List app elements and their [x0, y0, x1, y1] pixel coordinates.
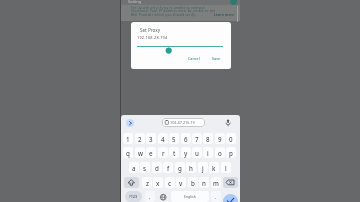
button[interactable]: v — [176, 177, 186, 188]
button[interactable]: p — [226, 147, 236, 158]
staticText: b — [191, 179, 195, 187]
staticText: i — [207, 149, 209, 157]
button[interactable]: English — [171, 191, 209, 202]
staticText: k — [212, 164, 216, 172]
staticText: e — [149, 149, 153, 157]
button[interactable]: a — [129, 162, 139, 173]
staticText: n — [202, 179, 206, 187]
staticText: y — [184, 149, 188, 157]
staticText: g — [178, 164, 182, 172]
button[interactable]: Set Proxy — [131, 22, 231, 69]
button[interactable]: q — [123, 147, 133, 158]
staticText: z — [146, 179, 149, 187]
staticText: v — [179, 179, 183, 187]
button[interactable]: 7 — [192, 133, 202, 144]
button[interactable]: o — [215, 147, 225, 158]
button[interactable]: y — [181, 147, 191, 158]
button[interactable]: r — [158, 147, 168, 158]
staticText: 4 — [161, 135, 165, 143]
button[interactable]: d — [152, 162, 162, 173]
staticText: , — [149, 194, 151, 200]
staticText: 2 — [138, 135, 142, 143]
button[interactable]: s — [140, 162, 150, 173]
staticText: w — [138, 149, 143, 157]
staticText: 8 — [206, 135, 210, 143]
staticText: English — [184, 194, 196, 199]
staticText: l — [225, 164, 227, 172]
staticText: c — [168, 179, 172, 187]
button[interactable] — [230, 0, 237, 5]
staticText: Set up wifi only if you're unable to con… — [131, 6, 205, 10]
button[interactable] — [126, 119, 134, 127]
staticText: Save — [212, 56, 221, 61]
button[interactable]: 0 — [226, 133, 236, 144]
staticText: Setting — [128, 0, 142, 4]
button[interactable]: ?123 — [125, 191, 142, 202]
button[interactable] — [124, 177, 139, 188]
staticText: Learn more — [214, 13, 235, 17]
button[interactable]: 9 — [215, 133, 225, 144]
button[interactable]: x — [153, 177, 163, 188]
button[interactable]: g — [175, 162, 185, 173]
button[interactable]: k — [209, 162, 219, 173]
button[interactable]: 2 — [135, 133, 145, 144]
button[interactable]: 103.47.216.19 — [162, 118, 205, 127]
staticText: 0 — [229, 135, 233, 143]
staticText: a — [132, 164, 136, 172]
staticText: s — [143, 164, 147, 172]
button[interactable]: t — [169, 147, 179, 158]
staticText: d — [155, 164, 159, 172]
staticText: bluetooth. Your IP address must be visib… — [131, 9, 216, 13]
staticText: o — [218, 149, 222, 157]
staticText: x — [156, 179, 160, 187]
staticText: f — [167, 164, 170, 172]
staticText: u — [195, 149, 199, 157]
button[interactable]: n — [199, 177, 209, 188]
staticText: h — [189, 164, 193, 172]
button[interactable]: z — [142, 177, 152, 188]
button[interactable]: 4 — [158, 133, 168, 144]
button[interactable]: 8 — [203, 133, 213, 144]
staticText: 3 — [149, 135, 153, 143]
button[interactable]: w — [135, 147, 145, 158]
staticText: 9 — [218, 135, 222, 143]
staticText: 7 — [195, 135, 199, 143]
staticText: Set Proxy — [140, 27, 161, 33]
staticText: ?123 — [129, 194, 138, 199]
button[interactable]: 1 — [123, 133, 133, 144]
button[interactable] — [223, 194, 238, 202]
staticText: p — [229, 149, 233, 157]
staticText: r — [162, 149, 165, 157]
button[interactable]: i — [203, 147, 213, 158]
button[interactable]: , — [145, 191, 155, 202]
staticText: 103.47.216.19 — [170, 120, 195, 125]
button[interactable]: . — [211, 191, 221, 202]
button[interactable]: u — [192, 147, 202, 158]
button[interactable]: 6 — [181, 133, 191, 144]
staticText: 6 — [184, 135, 188, 143]
staticText: q — [126, 149, 130, 157]
button[interactable]: c — [165, 177, 175, 188]
staticText: Cancel — [188, 56, 200, 61]
button[interactable]: m — [211, 177, 221, 188]
staticText: m — [213, 179, 219, 187]
button[interactable]: 3 — [146, 133, 156, 144]
button[interactable]: b — [188, 177, 198, 188]
staticText: . — [215, 194, 217, 200]
staticText: 5 — [172, 135, 176, 143]
staticText: t — [173, 149, 176, 157]
button[interactable] — [223, 177, 238, 188]
button[interactable]: f — [163, 162, 173, 173]
staticText: 192.168.28.194 — [137, 35, 168, 40]
button[interactable]: 5 — [169, 133, 179, 144]
button[interactable]: e — [146, 147, 156, 158]
button[interactable]: j — [198, 162, 208, 173]
button[interactable]: h — [186, 162, 196, 173]
staticText: j — [202, 164, 204, 172]
button[interactable]: l — [221, 162, 231, 173]
staticText: Wifi Provider which you should verify. — [131, 13, 197, 17]
staticText: 1 — [126, 135, 130, 143]
